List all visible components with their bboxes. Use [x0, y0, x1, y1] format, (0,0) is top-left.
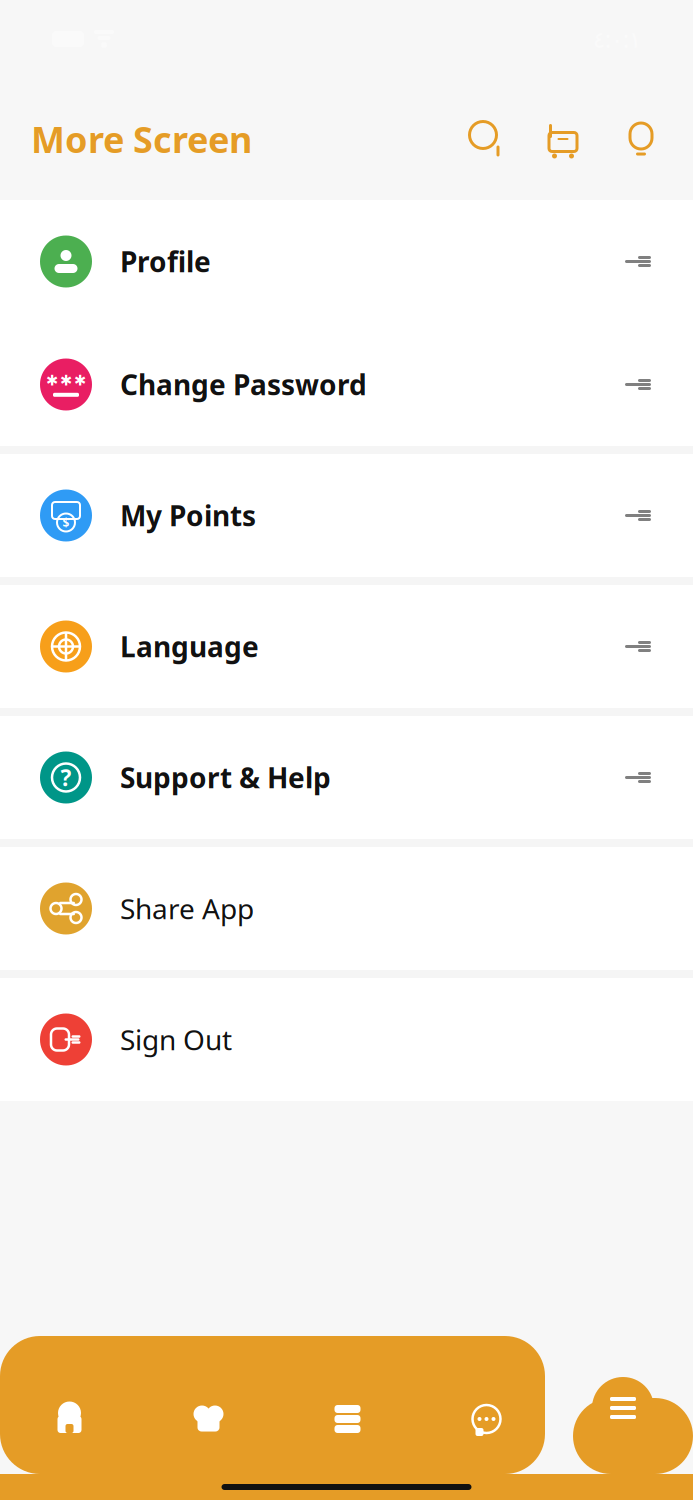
button[interactable]: Notifications: [620, 118, 662, 160]
button[interactable]: Categories: [278, 1384, 417, 1454]
button[interactable]: Home: [0, 1384, 139, 1454]
button[interactable]: Share App: [0, 847, 693, 970]
staticText: Sign Out: [120, 1021, 232, 1058]
button[interactable]: Messages: [417, 1384, 556, 1454]
staticText: ?: [60, 762, 71, 792]
staticText: Language: [120, 628, 259, 665]
staticText: $: [62, 514, 69, 530]
button[interactable]: Search: [466, 118, 508, 160]
button[interactable]: Language: [0, 585, 693, 708]
staticText: More Screen: [31, 115, 252, 163]
button[interactable]: Favorites: [139, 1384, 278, 1454]
staticText: Change Password: [120, 366, 367, 403]
button[interactable]: Cart: [543, 118, 585, 160]
button[interactable]: ?: [0, 716, 693, 839]
staticText: Share App: [120, 890, 254, 927]
button[interactable]: $: [0, 454, 693, 577]
staticText: My Points: [120, 497, 256, 534]
staticText: ✱: [46, 372, 58, 389]
staticText: Profile: [120, 243, 211, 280]
staticText: ✱: [60, 372, 72, 389]
staticText: ✱: [74, 372, 86, 389]
button[interactable]: Profile: [0, 200, 693, 323]
button[interactable]: Menu: [592, 1377, 654, 1439]
button[interactable]: Sign Out: [0, 978, 693, 1101]
staticText: Support & Help: [120, 759, 331, 796]
button[interactable]: ✱: [0, 323, 693, 446]
